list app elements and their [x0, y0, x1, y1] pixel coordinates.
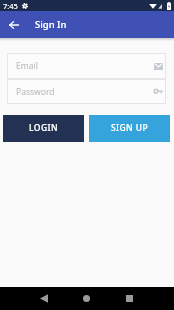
button[interactable]: SIGN UP	[89, 115, 170, 142]
staticText: LOGIN	[29, 122, 58, 134]
staticText: SIGN UP	[111, 122, 148, 134]
staticText: Email	[16, 60, 38, 72]
button[interactable]: LOGIN	[3, 115, 84, 142]
button[interactable]: Password	[7, 79, 166, 104]
staticText: Password	[16, 86, 55, 98]
staticText: Sign In	[35, 18, 67, 31]
button[interactable]: Home	[75, 287, 98, 310]
button[interactable]: Recents	[118, 287, 141, 310]
button[interactable]: Email	[7, 53, 166, 79]
staticText: 7:45	[3, 1, 18, 11]
button[interactable]: Back	[32, 287, 55, 310]
button[interactable]: Back	[0, 11, 27, 38]
